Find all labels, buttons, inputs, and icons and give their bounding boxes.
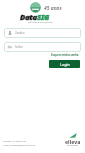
staticText: Login: [60, 62, 70, 67]
staticText: 45 anos: [44, 5, 62, 12]
other: User: [8, 31, 12, 35]
staticText: SIG: [37, 12, 49, 22]
other: Password: [8, 45, 12, 49]
staticText: elleva: [65, 138, 81, 145]
staticText: SIG: [37, 12, 49, 22]
staticText: Senha: [15, 45, 23, 49]
button[interactable]: User: [4, 28, 81, 38]
staticText: Data: [20, 12, 37, 22]
staticText: Usuário: [15, 31, 25, 35]
button[interactable]: Esqueci minha senha: [50, 52, 80, 58]
button[interactable]: Password: [4, 42, 81, 52]
staticText: tecnologia: [67, 144, 78, 147]
staticText: Data: [20, 12, 37, 22]
button[interactable]: Login: [49, 60, 80, 68]
staticText: Contato: 47 3326-0444: [3, 140, 27, 143]
staticText: E-mail: datasig@datasig.com.br: [3, 144, 36, 147]
staticText: SOLUÇÕES EM TECNOLOGIA: [28, 21, 54, 24]
